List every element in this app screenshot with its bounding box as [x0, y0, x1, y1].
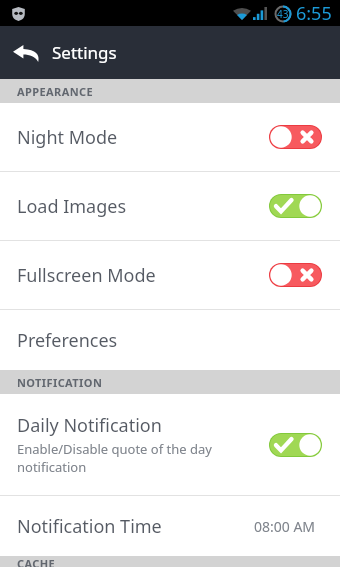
staticText: Enable/Disable quote of the day notifica… — [17, 440, 212, 476]
button[interactable]: Night Mode — [0, 103, 340, 171]
staticText: 08:00 AM — [254, 517, 316, 536]
button[interactable]: Load Images — [0, 172, 340, 240]
staticText: NOTIFICATION — [17, 375, 103, 390]
button[interactable]: Off — [269, 263, 322, 287]
staticText: Settings — [52, 41, 117, 64]
button[interactable]: Off — [269, 125, 322, 149]
staticText: 6:55 — [296, 1, 332, 26]
staticText: APPEARANCE — [17, 84, 94, 99]
button[interactable]: Back — [0, 27, 52, 79]
staticText: Fullscreen Mode — [17, 263, 156, 288]
button[interactable]: On — [269, 194, 322, 218]
button[interactable]: Daily Notification — [0, 394, 340, 495]
staticText: Preferences — [17, 328, 118, 353]
button[interactable]: On — [269, 433, 322, 457]
staticText: Night Mode — [17, 125, 118, 150]
staticText: Load Images — [17, 194, 127, 219]
staticText: Daily Notification — [17, 413, 162, 438]
button[interactable]: Notification Time — [0, 496, 340, 556]
staticText: Notification Time — [17, 514, 162, 539]
button[interactable]: Fullscreen Mode — [0, 241, 340, 309]
staticText: 43 — [277, 7, 289, 21]
button[interactable]: Preferences — [0, 310, 340, 370]
staticText: CACHE — [17, 556, 56, 567]
